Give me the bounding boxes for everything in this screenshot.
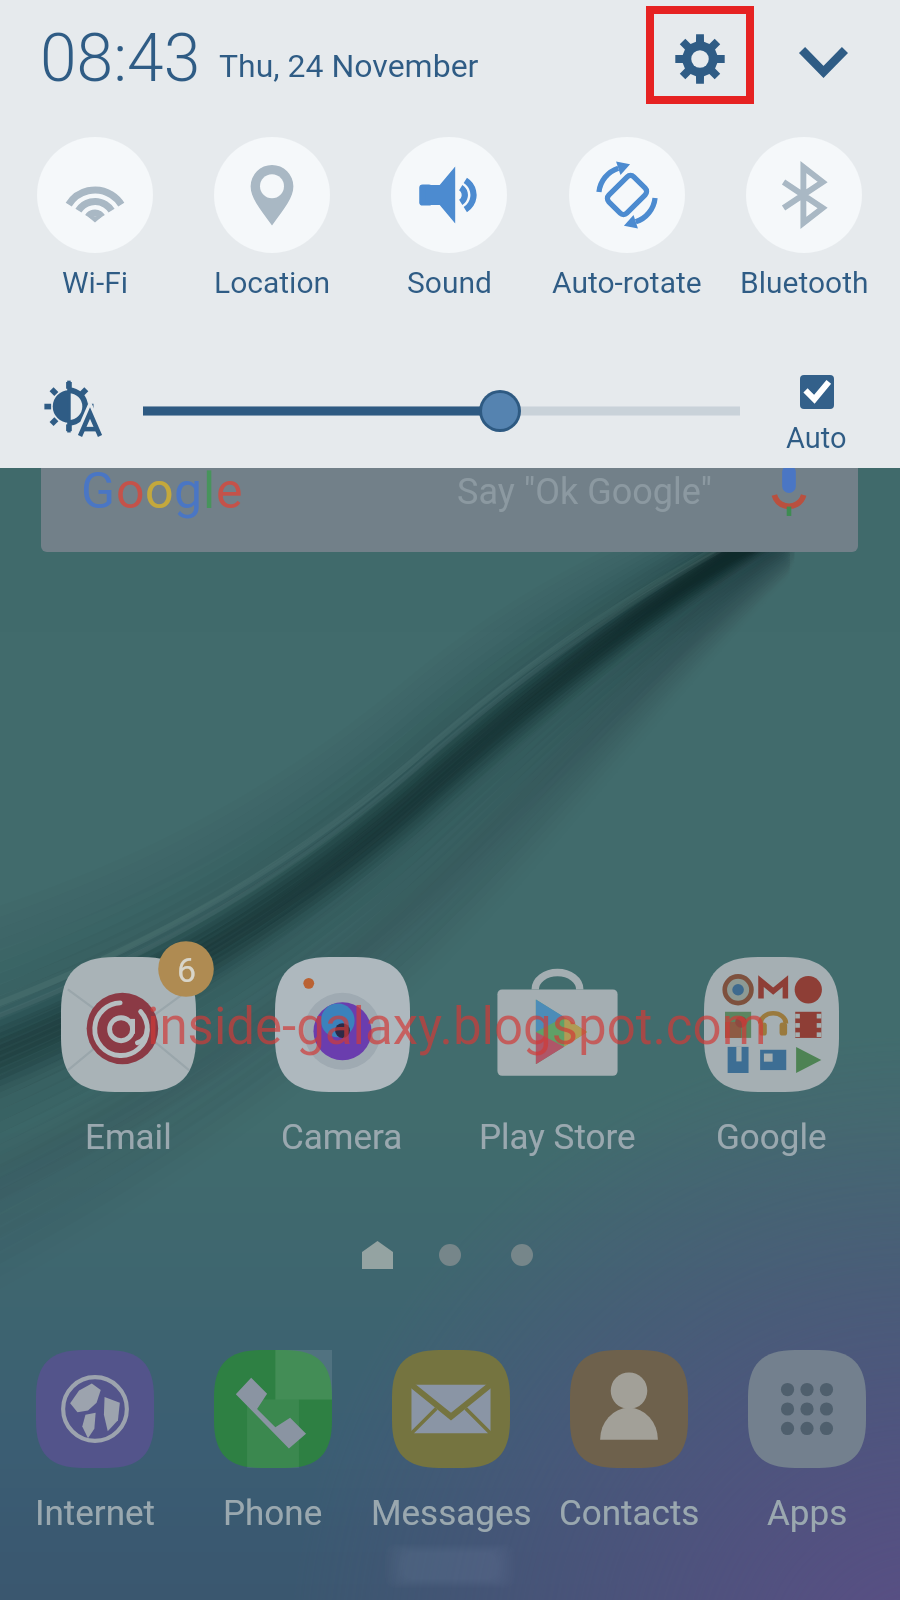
staticText: 08:43 [40,20,201,97]
other: Voice search [770,465,808,517]
button[interactable]: Phone [183,1346,363,1534]
button[interactable]: G [41,430,858,552]
button[interactable]: Messages [361,1346,541,1534]
button[interactable]: Wi-Fi [7,130,183,300]
staticText: l [203,462,216,521]
staticText: g [174,462,203,521]
staticText: G [81,462,116,521]
button[interactable]: Location [184,130,360,300]
staticText: o [116,462,145,521]
staticText: Internet [35,1493,156,1534]
button[interactable]: Auto [770,368,862,458]
staticText: Auto-rotate [552,265,702,300]
button[interactable]: Expand quick settings [789,29,857,95]
staticText: Google [716,1117,827,1158]
button[interactable]: Bluetooth [716,130,892,300]
button[interactable]: Apps [717,1346,897,1534]
staticText: 6 [177,950,197,990]
staticText: Contacts [559,1493,700,1534]
button[interactable]: Google [681,953,861,1158]
staticText: o [145,462,174,521]
staticText: Auto [786,421,847,455]
button[interactable]: Auto-rotate [539,130,715,300]
button[interactable]: Settings [650,10,750,100]
button[interactable]: Contacts [539,1346,719,1534]
button[interactable]: Camera [252,953,432,1158]
button[interactable]: Play Store [467,953,647,1158]
staticText: Location [214,265,331,300]
staticText: Email [85,1117,172,1158]
staticText: Phone [223,1493,323,1534]
staticText: Bluetooth [740,265,869,300]
button[interactable]: Brightness [133,381,750,441]
staticText: inside-galaxy.blogspot.com [147,997,767,1057]
staticText: Camera [281,1117,403,1158]
button[interactable]: Sound [361,130,537,300]
staticText: Wi-Fi [62,265,129,300]
button[interactable]: Internet [5,1346,185,1534]
button[interactable]: 6 [38,953,218,1158]
staticText: Play Store [479,1117,636,1158]
staticText: Messages [371,1493,532,1534]
staticText: Thu, 24 November [219,47,479,85]
staticText: e [216,462,243,521]
staticText: Say "Ok Google" [457,471,713,513]
staticText: Apps [767,1493,848,1534]
staticText: Sound [407,265,492,300]
